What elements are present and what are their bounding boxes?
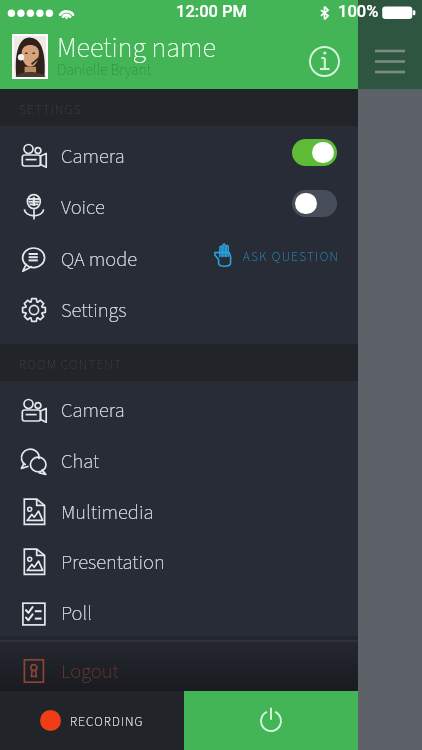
staticText: Settings xyxy=(61,296,337,325)
button[interactable]: Logout xyxy=(0,642,358,692)
button[interactable]: Presentation xyxy=(0,533,358,584)
staticText: Chat xyxy=(61,447,337,476)
button[interactable]: Info xyxy=(302,39,347,84)
staticText: RECORDING xyxy=(70,713,144,732)
button[interactable]: Power xyxy=(184,691,358,750)
button[interactable]: QA mode xyxy=(0,229,358,281)
button[interactable]: Camera xyxy=(0,381,358,432)
staticText: Meeting name xyxy=(57,28,216,68)
staticText: ROOM CONTENT xyxy=(19,355,122,374)
staticText: Voice xyxy=(61,193,292,222)
staticText: Logout xyxy=(61,657,337,686)
staticText: Camera xyxy=(61,142,292,171)
button[interactable]: Switch off xyxy=(292,190,337,217)
staticText: Multimedia xyxy=(61,498,337,527)
button[interactable]: Switch on xyxy=(292,139,337,166)
staticText: 12:00 PM xyxy=(176,2,247,21)
button[interactable]: Settings xyxy=(0,280,358,332)
button[interactable]: Camera xyxy=(0,126,358,178)
button[interactable]: Poll xyxy=(0,584,358,635)
staticText: ASK QUESTION xyxy=(243,248,340,267)
staticText: Camera xyxy=(61,396,337,425)
button[interactable]: Chat xyxy=(0,432,358,483)
staticText: 100% xyxy=(338,2,379,21)
staticText: Danielle Bryant xyxy=(57,59,152,81)
staticText: QA mode xyxy=(61,245,211,274)
staticText: Presentation xyxy=(61,548,337,577)
staticText: SETTINGS xyxy=(19,100,82,119)
button[interactable]: ASK QUESTION xyxy=(214,243,340,268)
button[interactable]: RECORDING xyxy=(0,691,184,750)
button[interactable]: Voice xyxy=(0,177,358,229)
staticText: Poll xyxy=(61,599,337,628)
button[interactable]: Menu xyxy=(358,32,422,82)
button[interactable]: Multimedia xyxy=(0,483,358,534)
